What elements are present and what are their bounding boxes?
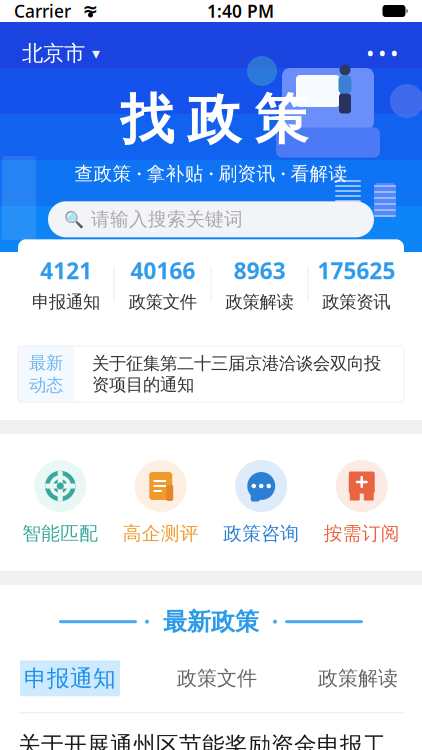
staticText: 🔍 [64,210,84,228]
staticText: 1:40 PM [207,0,274,22]
staticText: 高企测评 [123,522,199,545]
button[interactable]: 智能匹配 [10,456,110,549]
staticText: 请输入搜索关键词 [91,208,243,231]
staticText: 政策资讯 [322,291,390,313]
staticText: 策 [254,87,307,152]
button[interactable]: 申报通知 [20,660,120,696]
button[interactable]: 🔍 [48,201,374,237]
staticText: ≈ [82,0,98,20]
staticText: 8963 [233,255,285,285]
staticText: 按需订阅 [324,522,400,545]
staticText: 北京市 [22,40,85,67]
button[interactable]: 政策解读 [314,662,402,695]
button[interactable]: 政策咨询 [211,456,311,549]
staticText: 4121 [40,255,92,285]
staticText: 查政策 · 拿补贴 · 刷资讯 · 看解读 [74,160,347,185]
staticText: Carrier [14,0,71,22]
staticText: 最新政策 [163,607,259,636]
staticText: 关于征集第二十三届京港洽谈会双向投资项目的通知 [92,353,381,395]
staticText: 政策解读 [225,291,293,313]
button[interactable]: 关于开展通州区节能奖励资金申报工作的通知 [0,713,422,750]
staticText: 40166 [130,255,195,285]
button[interactable]: 北京市 [18,34,104,73]
staticText: • • • [367,42,398,65]
staticText: 智能匹配 [22,522,98,545]
staticText: 175625 [317,255,395,285]
staticText: 政策解读 [318,666,398,691]
staticText: 政策文件 [177,666,257,691]
staticText: 政策文件 [129,291,197,313]
staticText: 政策咨询 [223,522,299,545]
staticText: 动态 [29,374,63,396]
button[interactable]: 高企测评 [110,456,211,549]
staticText: 政 [187,87,240,152]
staticText: ▾ [92,44,100,63]
staticText: 找 [120,87,173,152]
button[interactable]: 最新 [18,346,404,402]
staticText: 申报通知 [24,664,116,692]
button[interactable]: More options [361,34,404,73]
staticText: 申报通知 [32,291,100,313]
staticText: 最新 [29,352,63,373]
button[interactable]: 政策文件 [173,662,261,695]
staticText [71,0,83,26]
button[interactable]: 按需订阅 [311,456,412,549]
staticText: 关于开展通州区节能奖励资金申报工作的通知 [18,731,386,750]
